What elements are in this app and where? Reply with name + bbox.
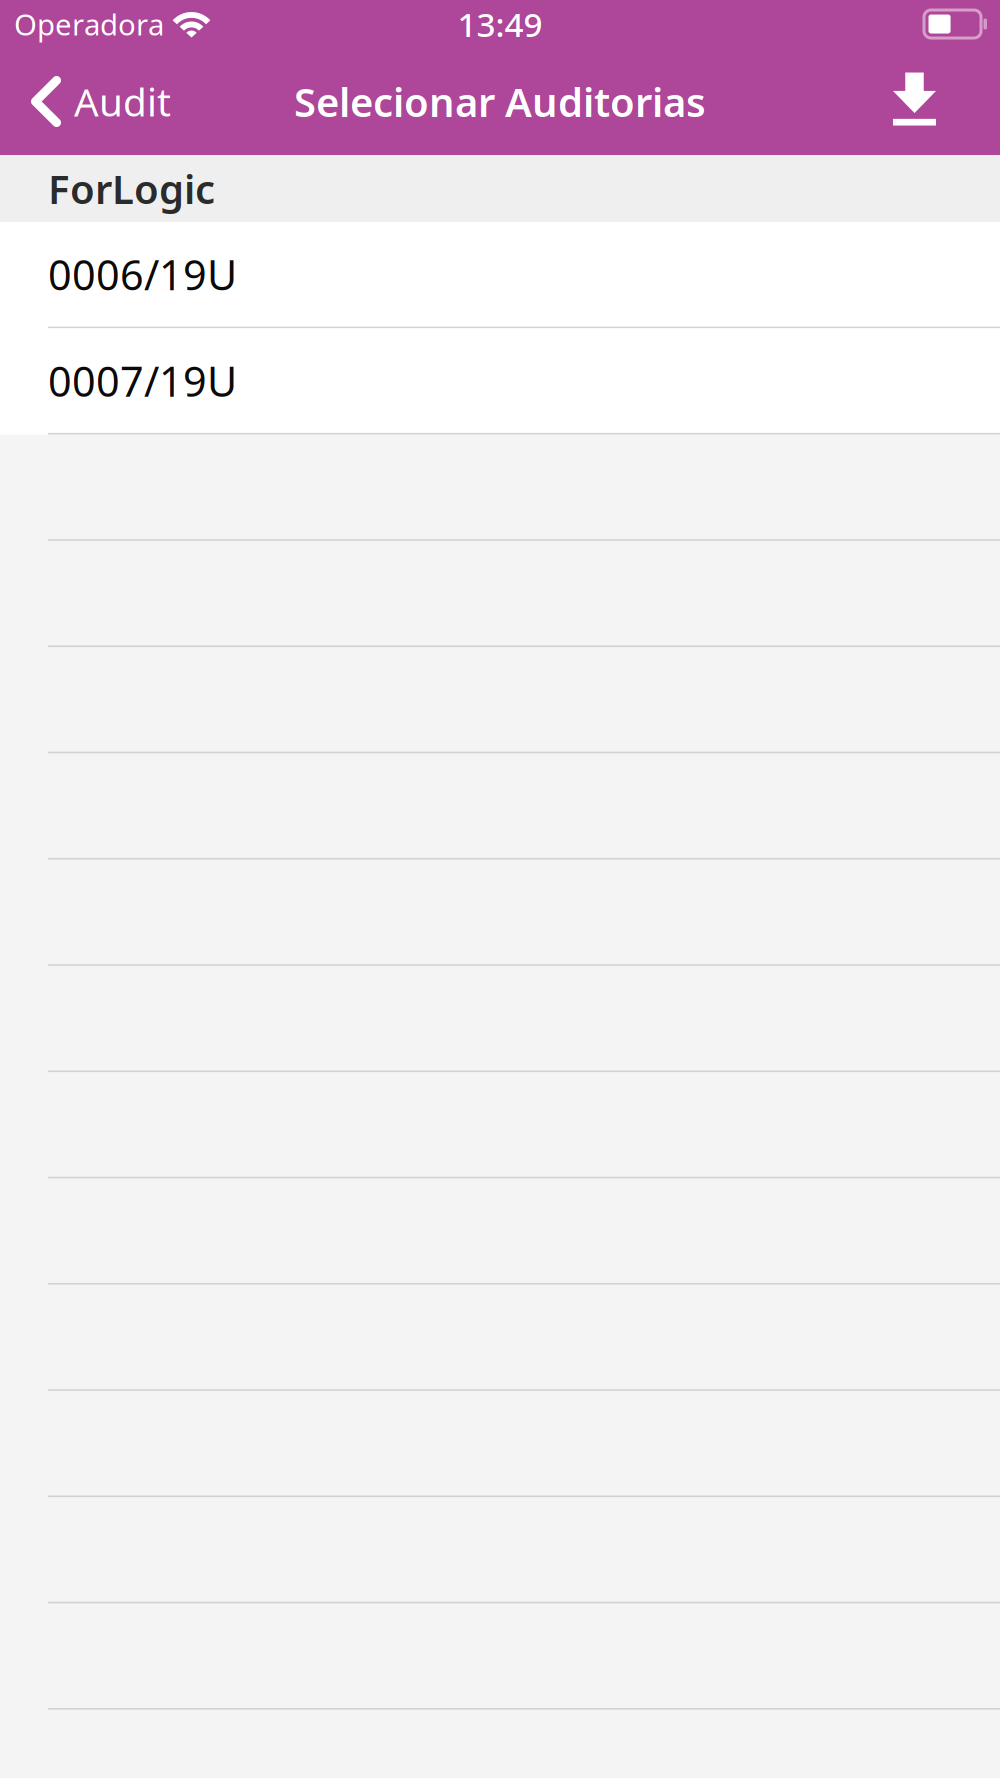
staticText: Operadora: [14, 4, 164, 43]
staticText: 13:49: [457, 2, 542, 46]
staticText: ForLogic: [48, 162, 215, 215]
staticText: Audit: [74, 76, 171, 127]
staticText: Selecionar Auditorias: [294, 75, 706, 128]
button[interactable]: Download: [861, 48, 1000, 155]
staticText: 0006/19U: [48, 247, 237, 302]
button[interactable]: 0006/19U: [0, 222, 1000, 328]
staticText: 0007/19U: [48, 353, 237, 408]
button[interactable]: 0007/19U: [0, 328, 1000, 435]
button[interactable]: Audit: [0, 48, 189, 155]
